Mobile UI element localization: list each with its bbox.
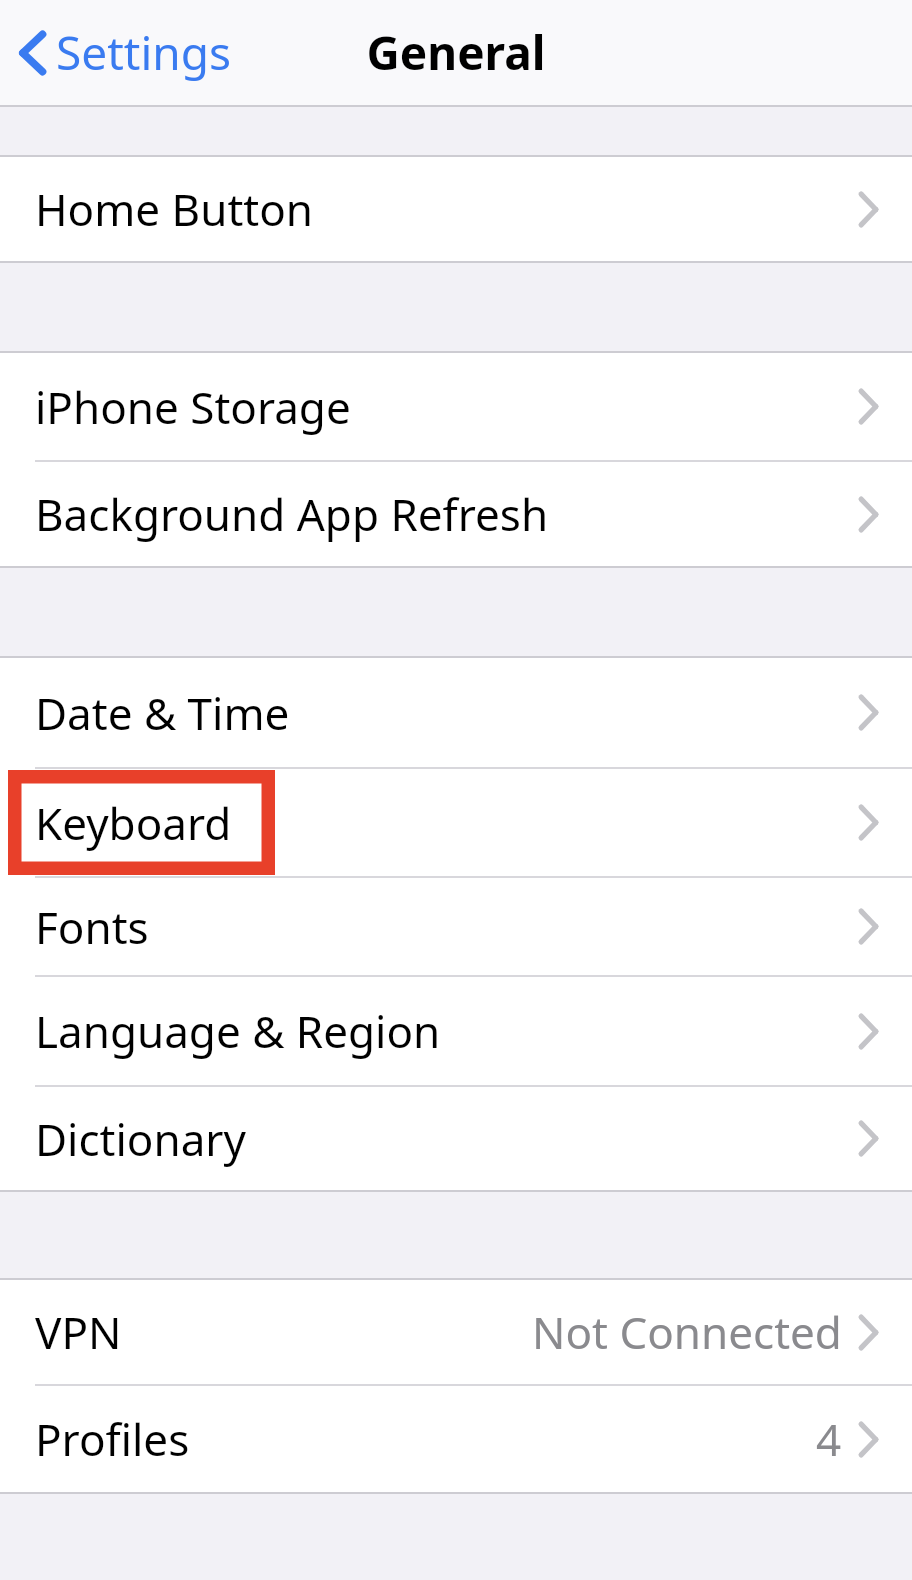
staticText: iPhone Storage bbox=[35, 377, 351, 437]
staticText: Fonts bbox=[35, 897, 149, 957]
button[interactable]: Profiles bbox=[0, 1386, 912, 1492]
staticText: Language & Region bbox=[35, 1001, 441, 1061]
button[interactable]: Background App Refresh bbox=[0, 462, 912, 566]
staticText: General bbox=[366, 21, 546, 84]
staticText: Profiles bbox=[35, 1409, 190, 1469]
button[interactable]: Keyboard bbox=[0, 769, 912, 876]
staticText: VPN bbox=[35, 1302, 122, 1362]
button[interactable]: Fonts bbox=[0, 878, 912, 975]
staticText: Dictionary bbox=[35, 1109, 246, 1169]
button[interactable]: Home Button bbox=[0, 157, 912, 261]
staticText: Background App Refresh bbox=[35, 484, 549, 544]
staticText: Keyboard bbox=[35, 793, 232, 853]
staticText: 4 bbox=[816, 1409, 842, 1469]
staticText: Not Connected bbox=[532, 1302, 842, 1362]
button[interactable]: VPN bbox=[0, 1280, 912, 1384]
button[interactable]: Dictionary bbox=[0, 1087, 912, 1190]
staticText: Date & Time bbox=[35, 683, 290, 743]
button[interactable]: Back to Settings bbox=[18, 21, 232, 84]
staticText: Settings bbox=[56, 21, 232, 84]
staticText: Home Button bbox=[35, 179, 313, 239]
button[interactable]: Language & Region bbox=[0, 977, 912, 1085]
button[interactable]: Date & Time bbox=[0, 658, 912, 767]
button[interactable]: iPhone Storage bbox=[0, 353, 912, 460]
